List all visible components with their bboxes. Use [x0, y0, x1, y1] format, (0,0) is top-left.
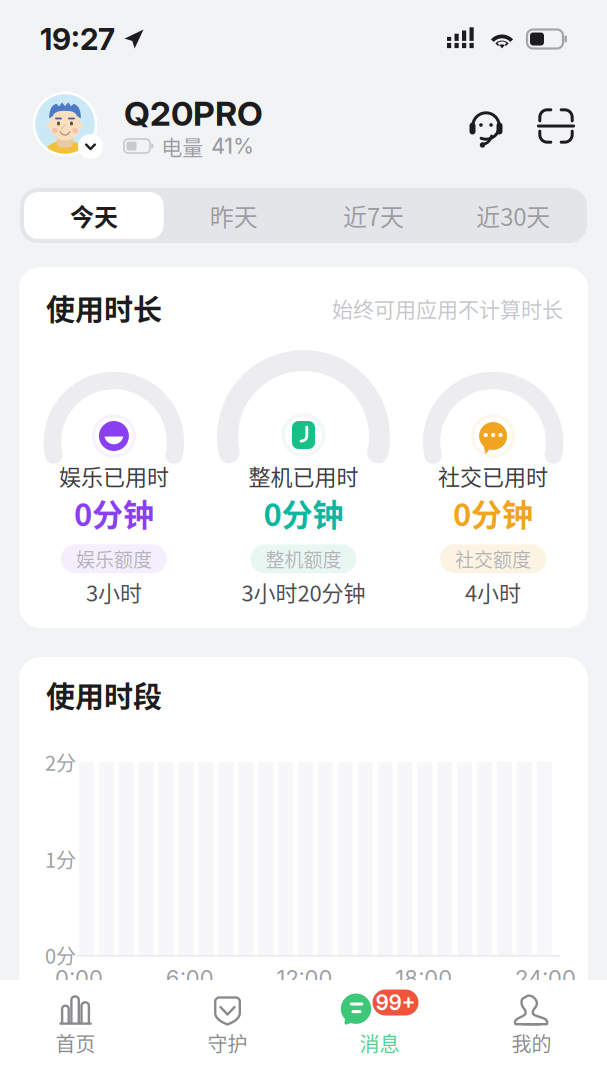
staticText: 0:00: [55, 965, 103, 991]
staticText: 整机已用时: [248, 463, 358, 488]
staticText: 4小时: [465, 579, 521, 605]
button[interactable]: 99+: [303, 980, 455, 1080]
button[interactable]: 近30天: [443, 192, 583, 239]
staticText: 0分钟: [453, 495, 533, 531]
staticText: 19:27: [40, 22, 115, 56]
staticText: 首页: [55, 1031, 95, 1055]
button[interactable]: 守护: [151, 980, 303, 1080]
staticText: 使用时段: [46, 678, 162, 712]
staticText: 3小时: [86, 579, 142, 605]
staticText: 整机额度: [265, 548, 341, 570]
staticText: 41%: [211, 134, 254, 158]
staticText: Q20PRO: [124, 94, 263, 133]
button[interactable]: 昨天: [164, 192, 304, 239]
staticText: 电量: [161, 134, 203, 158]
staticText: 社交已用时: [438, 463, 548, 488]
button[interactable]: 首页: [0, 980, 151, 1080]
staticText: 守护: [207, 1031, 247, 1055]
button[interactable]: 扫一扫: [533, 103, 579, 149]
staticText: 娱乐已用时: [59, 463, 169, 488]
staticText: 0分: [45, 943, 76, 967]
staticText: 社交额度: [455, 548, 531, 570]
staticText: 消息: [359, 1031, 399, 1055]
staticText: 2分: [45, 750, 76, 774]
staticText: 0分钟: [263, 495, 343, 531]
staticText: 1分: [45, 847, 76, 871]
button[interactable]: 客服: [463, 103, 509, 149]
staticText: 近7天: [343, 202, 404, 229]
staticText: 99+: [375, 990, 415, 1014]
staticText: 18:00: [395, 965, 452, 991]
staticText: 娱乐额度: [76, 548, 152, 570]
staticText: 0分钟: [74, 495, 154, 531]
staticText: 我的: [511, 1031, 551, 1055]
button[interactable]: 近7天: [303, 192, 443, 239]
staticText: 昨天: [210, 202, 258, 229]
staticText: 使用时长: [46, 291, 162, 325]
button[interactable]: 我的: [455, 980, 607, 1080]
staticText: 始终可用应用不计算时长: [332, 296, 563, 320]
staticText: 12:00: [276, 965, 332, 991]
staticText: 今天: [70, 202, 118, 229]
button[interactable]: 今天: [24, 192, 164, 239]
staticText: 24:00: [515, 965, 576, 991]
staticText: 近30天: [476, 202, 550, 229]
staticText: 6:00: [166, 965, 214, 991]
staticText: 3小时20分钟: [241, 579, 365, 605]
